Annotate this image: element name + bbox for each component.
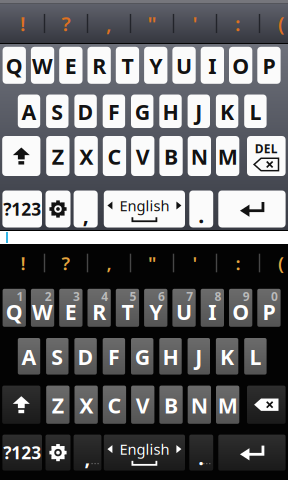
- button[interactable]: Shift: [2, 136, 40, 176]
- button[interactable]: ": [130, 4, 173, 43]
- button[interactable]: V: [131, 386, 154, 424]
- button[interactable]: G: [131, 94, 153, 128]
- button[interactable]: U: [172, 47, 196, 84]
- button[interactable]: (: [259, 4, 288, 43]
- button[interactable]: S: [46, 338, 68, 375]
- button[interactable]: Symbols: [2, 435, 42, 471]
- button[interactable]: ": [130, 244, 173, 282]
- button[interactable]: K: [216, 338, 238, 375]
- button[interactable]: !: [1, 4, 44, 43]
- button[interactable]: ,: [87, 4, 130, 43]
- button[interactable]: I: [201, 47, 224, 84]
- button[interactable]: D: [74, 338, 97, 375]
- staticText: S: [51, 343, 63, 371]
- button[interactable]: N: [188, 136, 211, 176]
- button[interactable]: D: [74, 94, 97, 128]
- button[interactable]: Delete: [247, 136, 286, 176]
- staticText: D: [78, 343, 94, 371]
- button[interactable]: ?: [44, 4, 87, 43]
- button[interactable]: ,: [87, 244, 130, 282]
- button[interactable]: J: [188, 338, 210, 375]
- staticText: A: [21, 98, 36, 126]
- staticText: Z: [52, 142, 64, 171]
- staticText: T: [121, 52, 133, 80]
- button[interactable]: S: [46, 94, 68, 128]
- staticText: .: [198, 201, 204, 229]
- button[interactable]: G: [131, 338, 153, 375]
- button[interactable]: C: [103, 386, 126, 424]
- button[interactable]: Q: [3, 289, 26, 327]
- button[interactable]: ': [173, 4, 216, 43]
- button[interactable]: Return: [218, 435, 286, 471]
- button[interactable]: !: [1, 244, 44, 282]
- button[interactable]: H: [159, 338, 182, 375]
- button[interactable]: ?: [44, 244, 87, 282]
- button[interactable]: A: [18, 94, 40, 128]
- button[interactable]: Z: [46, 386, 69, 424]
- button[interactable]: X: [74, 386, 98, 424]
- button[interactable]: Period: [189, 435, 213, 471]
- staticText: G: [135, 343, 150, 371]
- button[interactable]: :: [216, 244, 259, 282]
- button[interactable]: Q: [3, 47, 26, 84]
- button[interactable]: Space: [104, 435, 185, 471]
- staticText: H: [162, 343, 178, 371]
- button[interactable]: F: [103, 338, 125, 375]
- button[interactable]: W: [31, 289, 54, 327]
- staticText: :: [235, 251, 240, 275]
- staticText: N: [191, 142, 208, 171]
- button[interactable]: O: [229, 47, 252, 84]
- button[interactable]: M: [216, 386, 239, 424]
- staticText: U: [176, 298, 192, 326]
- staticText: Q: [6, 298, 23, 326]
- button[interactable]: B: [159, 386, 183, 424]
- button[interactable]: Y: [144, 289, 167, 327]
- button[interactable]: Z: [46, 136, 69, 176]
- button[interactable]: Period: [189, 190, 213, 227]
- button[interactable]: Delete: [247, 386, 286, 424]
- button[interactable]: A: [18, 338, 40, 375]
- button[interactable]: Return: [218, 190, 286, 227]
- button[interactable]: P: [257, 47, 281, 84]
- button[interactable]: F: [103, 94, 125, 128]
- button[interactable]: Shift: [2, 386, 40, 424]
- button[interactable]: :: [216, 4, 259, 43]
- button[interactable]: L: [244, 338, 267, 375]
- button[interactable]: M: [216, 136, 239, 176]
- button[interactable]: Y: [144, 47, 167, 84]
- button[interactable]: Settings: [45, 435, 70, 471]
- button[interactable]: T: [116, 289, 139, 327]
- button[interactable]: O: [229, 289, 252, 327]
- button[interactable]: C: [103, 136, 126, 176]
- button[interactable]: E: [59, 47, 82, 84]
- button[interactable]: L: [244, 94, 267, 128]
- button[interactable]: B: [159, 136, 183, 176]
- button[interactable]: V: [131, 136, 154, 176]
- button[interactable]: Comma: [74, 435, 101, 471]
- button[interactable]: P: [257, 289, 281, 327]
- button[interactable]: R: [87, 289, 111, 327]
- button[interactable]: Comma: [74, 190, 98, 227]
- button[interactable]: I: [201, 289, 224, 327]
- button[interactable]: K: [216, 94, 238, 128]
- staticText: 4: [101, 288, 108, 304]
- button[interactable]: W: [31, 47, 54, 84]
- button[interactable]: Space: [104, 190, 185, 227]
- button[interactable]: N: [188, 386, 211, 424]
- button[interactable]: T: [116, 47, 139, 84]
- button[interactable]: (: [259, 244, 288, 282]
- staticText: R: [92, 298, 106, 326]
- button[interactable]: E: [59, 289, 82, 327]
- button[interactable]: J: [188, 94, 210, 128]
- staticText: ?123: [3, 441, 41, 464]
- button[interactable]: ': [173, 244, 216, 282]
- button[interactable]: H: [159, 94, 182, 128]
- staticText: 2: [45, 288, 52, 304]
- button[interactable]: X: [74, 136, 98, 176]
- staticText: X: [79, 391, 93, 419]
- staticText: E: [65, 298, 77, 326]
- button[interactable]: U: [172, 289, 196, 327]
- button[interactable]: Settings: [45, 190, 70, 227]
- button[interactable]: Symbols: [2, 190, 42, 227]
- button[interactable]: R: [87, 47, 111, 84]
